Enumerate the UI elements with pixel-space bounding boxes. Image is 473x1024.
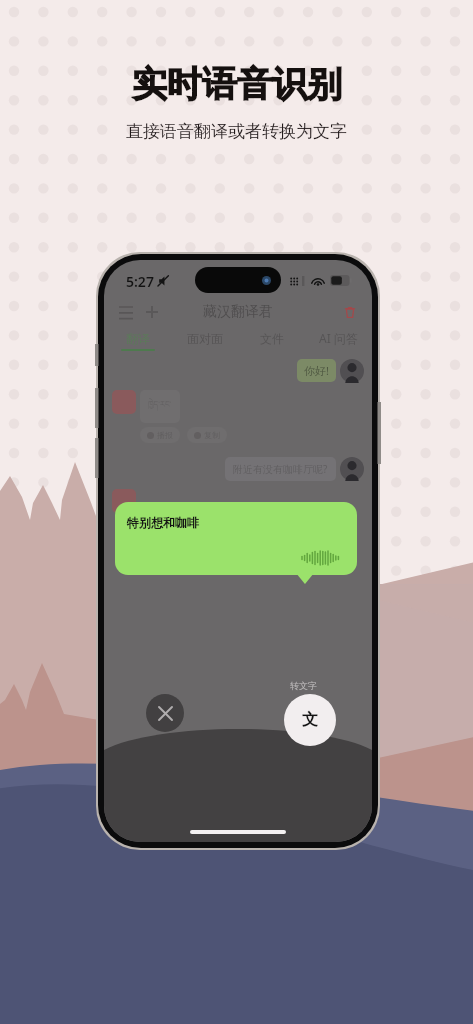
button[interactable]: Cancel — [146, 694, 184, 732]
staticText: 实时语音识别 — [132, 62, 342, 106]
button[interactable]: 复制 — [194, 430, 220, 440]
button[interactable]: AI 问答 — [305, 325, 372, 351]
button[interactable]: 面对面 — [171, 325, 238, 351]
staticText: 播报 — [157, 430, 173, 440]
button[interactable]: Delete — [338, 300, 362, 324]
staticText: 5:27 — [126, 272, 154, 291]
button[interactable]: 播报 — [147, 430, 173, 440]
staticText: 你好! — [304, 363, 329, 378]
button[interactable]: Convert to text — [284, 694, 336, 746]
staticText: 复制 — [204, 430, 220, 440]
staticText: 附近有没有咖啡厅呢? — [233, 462, 328, 476]
staticText: 文件 — [260, 331, 284, 346]
staticText: AI 问答 — [319, 330, 358, 346]
staticText: 转文字 — [290, 680, 317, 691]
button[interactable]: 翻译 — [104, 325, 171, 351]
staticText: 文 — [302, 710, 318, 730]
staticText: 面对面 — [187, 331, 223, 346]
staticText: 翻译 — [126, 331, 150, 346]
staticText: 藏汉翻译君 — [203, 303, 273, 321]
button[interactable]: New — [140, 300, 164, 324]
staticText: 特别想和咖啡 — [127, 515, 199, 530]
staticText: 直接语音翻译或者转换为文字 — [126, 121, 347, 142]
button[interactable]: Menu — [114, 300, 138, 324]
